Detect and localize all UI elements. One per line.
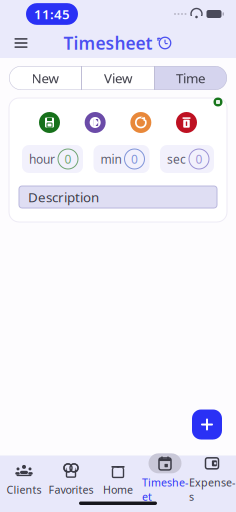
button[interactable]: min <box>93 145 149 173</box>
staticText: hour <box>29 151 55 167</box>
staticText: New <box>31 69 58 87</box>
staticText: 0 <box>64 151 71 167</box>
button[interactable]: New <box>9 66 81 90</box>
button[interactable]: Menu <box>6 30 36 56</box>
button[interactable]: Reset <box>130 112 151 133</box>
button[interactable]: hour <box>22 145 83 173</box>
staticText: Clients <box>6 482 41 497</box>
button[interactable]: Start <box>85 112 106 133</box>
button[interactable]: Description <box>19 186 217 208</box>
button[interactable]: Clients <box>0 461 47 495</box>
button[interactable]: Favorites <box>47 461 94 495</box>
staticText: Timesheet <box>142 475 188 504</box>
staticText: 11:45 <box>34 5 70 23</box>
staticText: Favorites <box>48 482 93 497</box>
button[interactable]: Home <box>94 461 141 495</box>
staticText: Expenses <box>189 475 235 504</box>
staticText: sec <box>167 151 186 167</box>
staticText: Home <box>103 482 133 497</box>
button[interactable]: sec <box>160 145 214 173</box>
staticText: Timesheet <box>63 31 152 54</box>
button[interactable]: Timesheet <box>141 461 188 495</box>
staticText: Time <box>176 69 206 87</box>
button[interactable]: Expenses <box>188 461 235 495</box>
staticText: min <box>100 151 121 167</box>
staticText: 0 <box>131 151 138 167</box>
button[interactable]: Add entry <box>192 409 222 439</box>
button[interactable]: Time <box>155 66 227 90</box>
staticText: Description <box>28 188 99 206</box>
button[interactable]: Delete <box>176 112 197 133</box>
button[interactable]: Save <box>39 112 60 133</box>
staticText: 0 <box>195 151 202 167</box>
button[interactable]: View <box>82 66 154 90</box>
staticText: View <box>104 69 132 87</box>
